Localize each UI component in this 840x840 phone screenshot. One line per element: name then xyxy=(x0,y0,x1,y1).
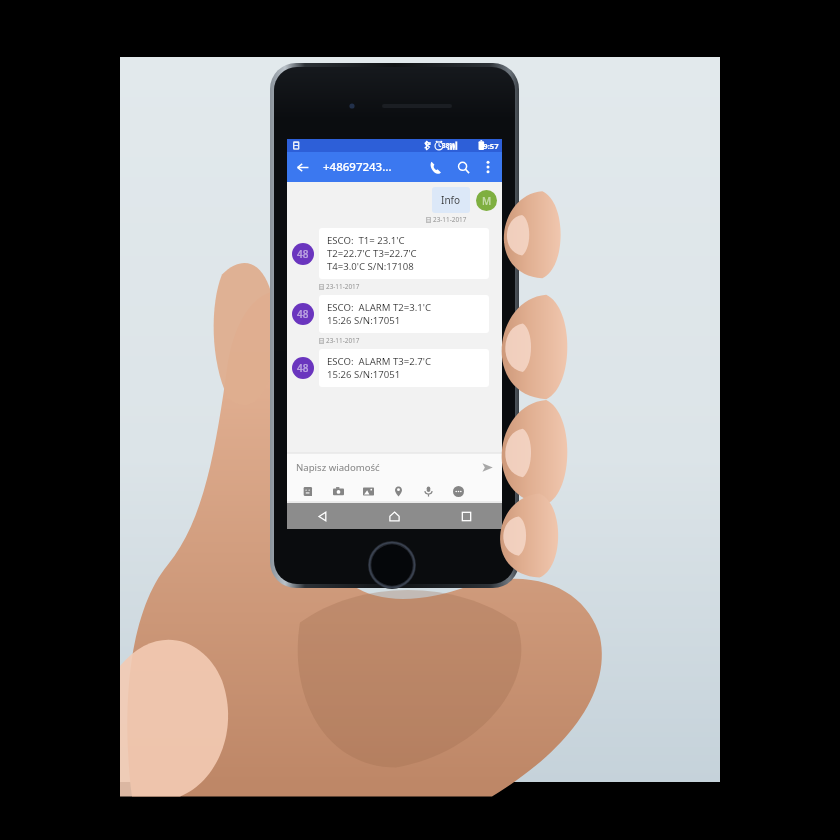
button[interactable]: Search xyxy=(449,153,477,181)
staticText: +48697243… xyxy=(323,159,421,175)
staticText: T4=3.0'C S/N:17108 xyxy=(327,260,414,273)
staticText: 48 xyxy=(297,307,309,321)
staticText: 09:57 xyxy=(479,141,499,151)
staticText: 23-11-2017 xyxy=(433,215,467,224)
button[interactable]: ESCO: ALARM T3=2.7'C xyxy=(319,349,489,387)
staticText: 15:26 S/N:17051 xyxy=(327,368,401,381)
button[interactable]: Voice xyxy=(413,480,443,502)
staticText: ESCO: ALARM T3=2.7'C xyxy=(327,355,432,368)
button[interactable]: 48 xyxy=(292,243,314,265)
staticText: LTE xyxy=(425,141,432,146)
staticText: Napisz wiadomość xyxy=(296,461,475,474)
button[interactable]: Back xyxy=(287,503,358,529)
button[interactable]: Sticker xyxy=(293,480,323,502)
button[interactable]: More options xyxy=(477,153,499,181)
button[interactable]: Gallery xyxy=(353,480,383,502)
staticText: 15:26 S/N:17051 xyxy=(327,314,401,327)
button[interactable]: Call xyxy=(421,153,449,181)
button[interactable]: ESCO: ALARM T2=3.1'C xyxy=(319,295,489,333)
button[interactable]: Location xyxy=(383,480,413,502)
button[interactable]: 48 xyxy=(292,357,314,379)
staticText: 23-11-2017 xyxy=(326,336,360,345)
button[interactable]: More xyxy=(443,480,473,502)
staticText: T2=22.7'C T3=22.7'C xyxy=(327,247,417,260)
staticText: 48 xyxy=(297,247,309,261)
staticText: Info xyxy=(441,193,461,207)
staticText: 38% xyxy=(442,141,456,150)
button[interactable]: Recents xyxy=(430,503,502,529)
button[interactable]: Napisz wiadomość xyxy=(287,454,502,480)
button[interactable]: Camera xyxy=(323,480,353,502)
staticText: 48 xyxy=(297,361,309,375)
staticText: 23-11-2017 xyxy=(326,282,360,291)
staticText: ESCO: T1= 23.1'C xyxy=(327,234,405,247)
button[interactable]: Home xyxy=(358,503,430,529)
button[interactable]: Back xyxy=(287,152,317,182)
staticText: M xyxy=(482,194,492,208)
button[interactable]: Send xyxy=(475,455,499,479)
button[interactable]: Info xyxy=(432,187,470,213)
button[interactable]: 48 xyxy=(292,303,314,325)
button[interactable]: M xyxy=(476,190,497,211)
button[interactable]: ESCO: T1= 23.1'C xyxy=(319,228,489,279)
staticText: ESCO: ALARM T2=3.1'C xyxy=(327,301,432,314)
